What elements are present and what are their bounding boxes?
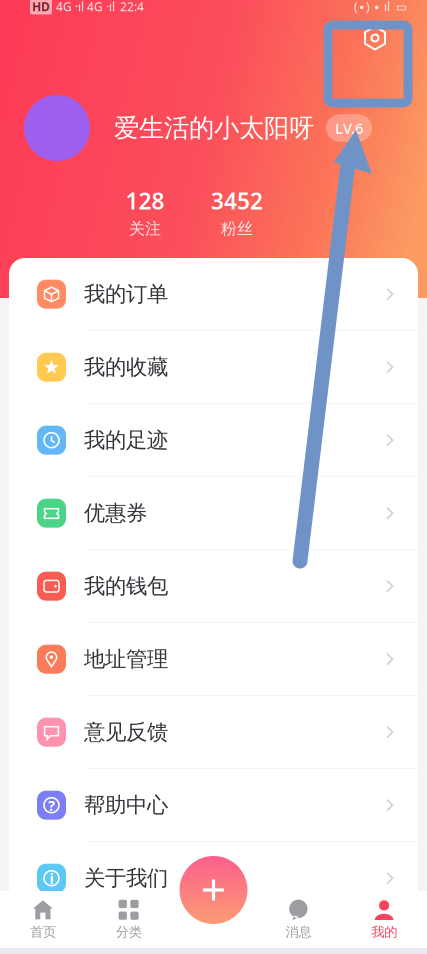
button[interactable]: 首页 <box>0 891 86 948</box>
button[interactable]: 我的订单 <box>9 258 418 331</box>
staticText: 首页 <box>30 924 56 940</box>
staticText: 我的足迹 <box>84 427 168 453</box>
staticText: HD <box>32 0 50 14</box>
button[interactable]: 爱生活的小太阳呀 <box>90 112 372 143</box>
staticText: ·ıl 4G ·ıl <box>75 0 115 14</box>
staticText: 4G <box>56 0 72 14</box>
button[interactable]: 意见反馈 <box>9 696 418 769</box>
button[interactable]: 分类 <box>86 891 172 948</box>
staticText: (∙) ∙ ıl ▭ <box>354 0 407 14</box>
staticText: 地址管理 <box>84 646 168 672</box>
button[interactable]: 我的钱包 <box>9 550 418 623</box>
staticText: 关于我们 <box>84 865 168 891</box>
button[interactable]: 设置 <box>352 15 398 61</box>
staticText: 帮助中心 <box>84 792 168 818</box>
staticText: i <box>49 868 53 888</box>
button[interactable]: ? <box>9 769 418 842</box>
staticText: 优惠券 <box>84 500 147 526</box>
staticText: ? <box>48 795 55 815</box>
staticText: 意见反馈 <box>84 719 168 745</box>
staticText: 128 <box>125 186 164 216</box>
staticText: 粉丝 <box>221 219 253 238</box>
staticText: 爱生活的小太阳呀 <box>114 112 314 143</box>
button[interactable]: 我的收藏 <box>9 331 418 404</box>
staticText: 我的钱包 <box>84 573 168 599</box>
button[interactable]: 发布 <box>179 856 247 924</box>
staticText: 我的收藏 <box>84 354 168 380</box>
staticText: 分类 <box>116 924 142 940</box>
button[interactable]: 地址管理 <box>9 623 418 696</box>
staticText: 关注 <box>129 219 161 238</box>
staticText: 3452 <box>211 186 263 216</box>
button[interactable]: 消息 <box>255 891 341 948</box>
staticText: 消息 <box>285 924 311 940</box>
button[interactable]: 优惠券 <box>9 477 418 550</box>
staticText: 我的 <box>371 924 397 940</box>
staticText: 22:4 <box>120 0 144 14</box>
button[interactable]: 我的足迹 <box>9 404 418 477</box>
staticText: 我的订单 <box>84 281 168 307</box>
button[interactable]: 3452 <box>206 191 268 233</box>
button[interactable]: 128 <box>114 191 176 233</box>
button[interactable]: 我的 <box>341 891 427 948</box>
button[interactable]: 头像 <box>24 95 90 161</box>
staticText: LV.6 <box>335 118 363 138</box>
button[interactable]: i <box>9 842 418 914</box>
